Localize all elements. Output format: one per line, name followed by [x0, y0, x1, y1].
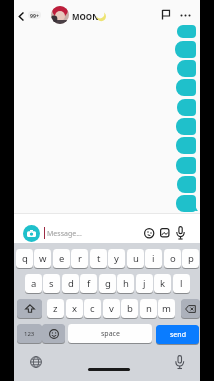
button[interactable]: o [164, 249, 181, 268]
button[interactable] [176, 226, 185, 240]
staticText: o [170, 252, 176, 265]
button[interactable] [160, 228, 170, 238]
button[interactable]: m [158, 299, 175, 318]
button[interactable]: u [127, 249, 144, 268]
staticText: k [160, 277, 166, 290]
button[interactable]: t [90, 249, 107, 268]
staticText: t [97, 252, 101, 265]
button[interactable] [18, 12, 25, 21]
staticText: w [39, 252, 47, 265]
staticText: send [170, 330, 186, 340]
button[interactable]: r [71, 249, 88, 268]
button[interactable]: c [84, 299, 101, 318]
button[interactable]: y [108, 249, 125, 268]
button[interactable]: l [173, 274, 190, 293]
button[interactable] [161, 9, 171, 20]
button[interactable]: b [121, 299, 138, 318]
staticText: Message... [47, 229, 82, 239]
button[interactable]: p [182, 249, 199, 268]
staticText: q [22, 252, 28, 265]
staticText: v [109, 302, 114, 315]
staticText: space [101, 329, 120, 339]
button[interactable]: space [68, 324, 152, 343]
button[interactable]: g [99, 274, 116, 293]
button[interactable]: s [43, 274, 60, 293]
button[interactable] [181, 299, 200, 318]
button[interactable]: d [62, 274, 79, 293]
button[interactable]: k [154, 274, 171, 293]
button[interactable]: a [25, 274, 42, 293]
button[interactable]: f [80, 274, 97, 293]
button[interactable] [180, 14, 192, 17]
staticText: e [59, 252, 65, 265]
staticText: d [68, 277, 74, 290]
button[interactable] [23, 225, 40, 242]
button[interactable] [175, 355, 185, 370]
button[interactable]: q [16, 249, 33, 268]
button[interactable]: n [140, 299, 157, 318]
button[interactable]: send [156, 325, 199, 344]
button[interactable]: w [34, 249, 51, 268]
staticText: z [53, 302, 58, 315]
staticText: MOON [72, 11, 99, 22]
staticText: j [143, 277, 146, 290]
button[interactable] [17, 299, 42, 318]
staticText: u [133, 252, 139, 265]
button[interactable]: e [53, 249, 70, 268]
staticText: b [127, 302, 133, 315]
button[interactable]: 123 [17, 324, 42, 343]
button[interactable]: v [103, 299, 120, 318]
staticText: y [114, 252, 119, 265]
staticText: 99+ [30, 12, 39, 19]
staticText: c [90, 302, 95, 315]
button[interactable] [144, 228, 155, 239]
staticText: i [152, 252, 155, 265]
button[interactable]: j [136, 274, 153, 293]
staticText: f [87, 277, 91, 290]
button[interactable]: z [47, 299, 64, 318]
staticText: x [72, 302, 78, 315]
button[interactable] [30, 356, 42, 368]
staticText: p [188, 252, 194, 265]
button[interactable] [42, 324, 65, 343]
staticText: m [162, 302, 171, 315]
staticText: 123 [24, 330, 35, 338]
staticText: g [105, 277, 111, 290]
staticText: a [31, 277, 37, 290]
staticText: l [180, 277, 183, 290]
button[interactable]: h [117, 274, 134, 293]
button[interactable]: i [145, 249, 162, 268]
button[interactable]: x [66, 299, 83, 318]
staticText: h [123, 277, 129, 290]
staticText: s [49, 277, 54, 290]
staticText: r [78, 252, 82, 265]
staticText: n [146, 302, 152, 315]
